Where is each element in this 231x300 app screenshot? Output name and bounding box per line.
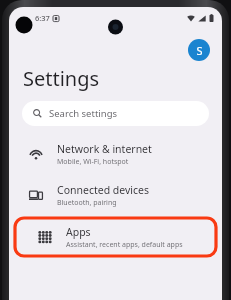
staticText: Network & internet (57, 142, 152, 156)
staticText: Search settings (49, 107, 118, 120)
button[interactable]: Account (188, 39, 210, 61)
button[interactable]: Search settings (22, 101, 209, 126)
button[interactable]: Network & internet (9, 137, 222, 171)
staticText: Settings (23, 65, 100, 92)
button[interactable]: Apps (18, 220, 217, 254)
staticText: Apps (66, 225, 91, 239)
staticText: Assistant, recent apps, default apps (66, 240, 183, 250)
staticText: Bluetooth, pairing (57, 198, 117, 208)
staticText: S (196, 43, 203, 58)
staticText: Connected devices (57, 183, 150, 197)
button[interactable]: Connected devices (9, 178, 222, 212)
staticText: 6:37 (35, 13, 50, 23)
staticText: Mobile, Wi-Fi, hotspot (57, 157, 129, 167)
